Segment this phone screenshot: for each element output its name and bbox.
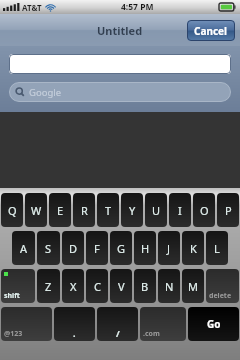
staticText: shift xyxy=(4,291,20,301)
staticText: @123 xyxy=(4,329,23,339)
staticText: U xyxy=(152,203,161,218)
staticText: B xyxy=(141,279,149,294)
button[interactable]: S xyxy=(37,231,60,265)
staticText: C xyxy=(94,279,101,294)
button[interactable]: Address field xyxy=(9,54,231,74)
staticText: I xyxy=(178,203,182,218)
staticText: T xyxy=(105,203,112,218)
button[interactable]: J xyxy=(158,231,180,265)
button[interactable]: E xyxy=(49,193,71,227)
staticText: A xyxy=(20,241,28,256)
button[interactable]: I xyxy=(169,193,191,227)
staticText: M xyxy=(188,279,198,294)
button[interactable]: @123 xyxy=(1,307,52,341)
button[interactable]: / xyxy=(97,307,138,341)
button[interactable]: H xyxy=(134,231,156,265)
staticText: Go xyxy=(207,317,221,331)
staticText: V xyxy=(118,279,125,294)
button[interactable]: C xyxy=(86,269,108,303)
staticText: W xyxy=(31,203,42,218)
staticText: F xyxy=(94,241,100,256)
staticText: 4:57 PM xyxy=(121,1,154,13)
button[interactable]: D xyxy=(62,231,84,265)
button[interactable]: shift xyxy=(1,269,35,303)
button[interactable]: .com xyxy=(140,307,186,341)
button[interactable]: R xyxy=(73,193,95,227)
staticText: Cancel xyxy=(194,24,228,38)
staticText: Google xyxy=(29,86,62,99)
staticText: .com xyxy=(143,329,160,339)
button[interactable]: U xyxy=(145,193,167,227)
staticText: E xyxy=(57,203,64,218)
button[interactable]: delete xyxy=(206,269,239,303)
button[interactable]: T xyxy=(97,193,119,227)
button[interactable]: B xyxy=(134,269,156,303)
button[interactable]: W xyxy=(25,193,47,227)
staticText: . xyxy=(73,327,76,339)
staticText: Z xyxy=(45,279,52,294)
button[interactable]: P xyxy=(217,193,239,227)
staticText: Q xyxy=(8,203,17,218)
staticText: D xyxy=(69,241,78,256)
staticText: G xyxy=(117,241,126,256)
staticText: X xyxy=(70,279,77,294)
button[interactable]: . xyxy=(54,307,95,341)
button[interactable]: M xyxy=(182,269,204,303)
staticText: S xyxy=(45,241,52,256)
staticText: L xyxy=(214,241,220,256)
button[interactable]: A xyxy=(12,231,35,265)
button[interactable]: N xyxy=(158,269,180,303)
button[interactable]: Go xyxy=(188,307,239,341)
button[interactable]: O xyxy=(193,193,215,227)
button[interactable]: L xyxy=(206,231,228,265)
staticText: N xyxy=(165,279,174,294)
staticText: delete xyxy=(209,291,232,301)
button[interactable]: G xyxy=(110,231,132,265)
staticText: Untitled xyxy=(97,23,143,38)
button[interactable]: Google xyxy=(9,82,231,102)
button[interactable]: F xyxy=(86,231,108,265)
staticText: R xyxy=(81,203,88,218)
button[interactable]: X xyxy=(62,269,84,303)
button[interactable]: Z xyxy=(37,269,60,303)
button[interactable]: K xyxy=(182,231,204,265)
button[interactable]: Q xyxy=(1,193,23,227)
staticText: O xyxy=(200,203,209,218)
staticText: / xyxy=(116,327,120,339)
staticText: P xyxy=(225,203,232,218)
button[interactable]: V xyxy=(110,269,132,303)
staticText: J xyxy=(167,241,171,256)
staticText: K xyxy=(190,241,197,256)
button[interactable]: Y xyxy=(121,193,143,227)
staticText: Y xyxy=(129,203,136,218)
button[interactable]: Cancel xyxy=(187,20,235,41)
staticText: H xyxy=(141,241,150,256)
staticText: AT&T xyxy=(22,2,42,13)
